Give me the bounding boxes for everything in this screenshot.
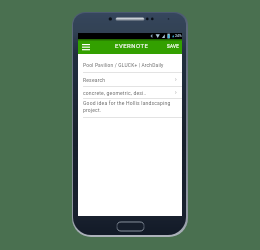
staticText: Pool Pavilion / GLUCK+ | ArchDaily: [83, 63, 178, 69]
staticText: Good idea for the Hollis landscaping pro…: [83, 100, 175, 113]
button[interactable]: SAVE: [163, 39, 182, 54]
button[interactable]: Pool Pavilion / GLUCK+ | ArchDaily: [78, 59, 182, 72]
staticText: 24%: [175, 34, 182, 38]
staticText: EVERNOTE: [115, 43, 149, 50]
staticText: Research: [83, 77, 173, 83]
button[interactable]: Menu: [78, 39, 94, 54]
button[interactable]: Research: [78, 73, 182, 86]
staticText: SAVE: [167, 44, 180, 49]
button[interactable]: Home: [117, 222, 144, 231]
staticText: concrete, geometric, desi..: [83, 90, 173, 96]
button[interactable]: concrete, geometric, desi..: [78, 87, 182, 98]
